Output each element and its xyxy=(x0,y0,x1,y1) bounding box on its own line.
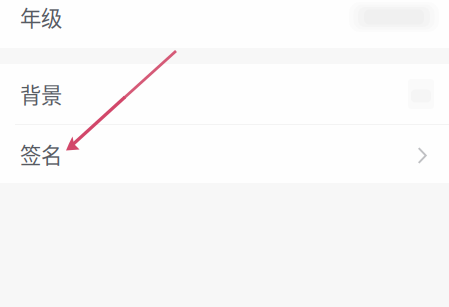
button[interactable]: 年级 xyxy=(0,0,449,48)
staticText: 签名 xyxy=(20,139,62,169)
button[interactable]: 背景 xyxy=(0,64,449,124)
button[interactable]: 签名 xyxy=(0,125,449,183)
staticText: 背景 xyxy=(20,79,62,109)
staticText: 年级 xyxy=(20,2,62,32)
